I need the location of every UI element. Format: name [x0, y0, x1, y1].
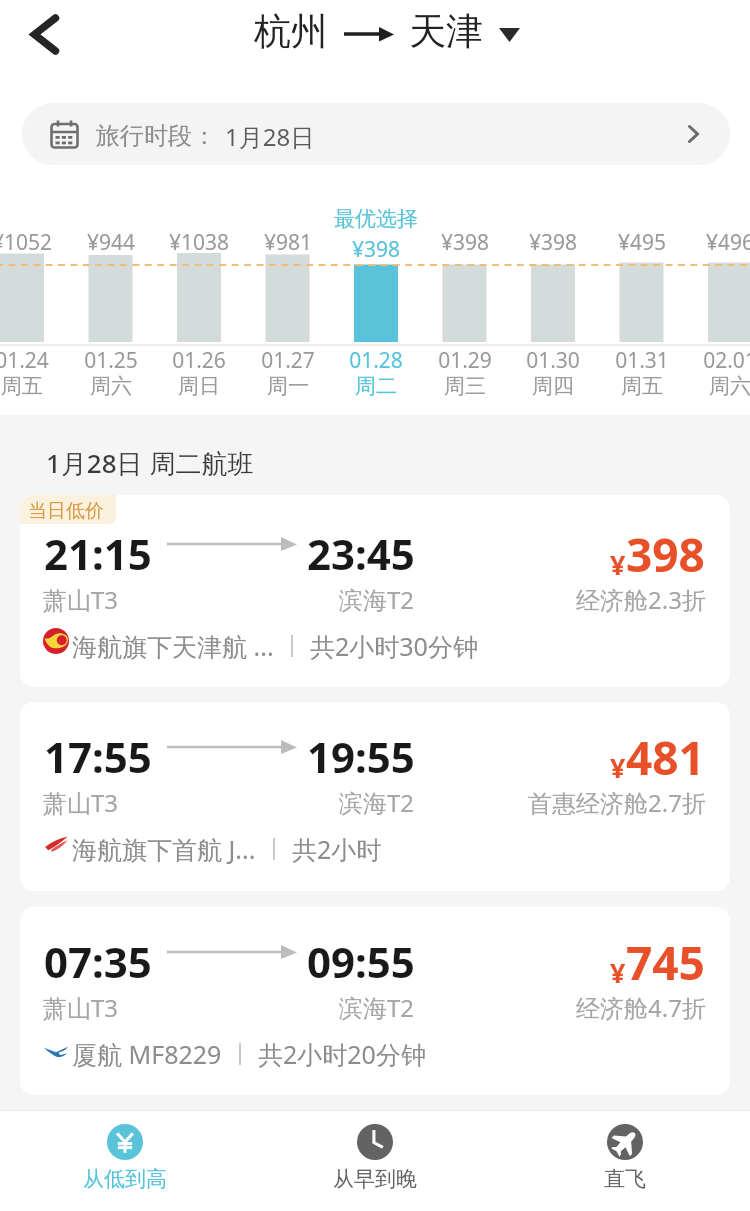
- staticText: 萧山T3: [43, 583, 119, 616]
- button[interactable]: 当日低价: [20, 495, 730, 687]
- button[interactable]: Back: [6, 0, 82, 76]
- button[interactable]: 直飞: [500, 1110, 750, 1211]
- staticText: 天津: [409, 8, 483, 55]
- staticText: 旅行时段：: [96, 121, 216, 151]
- staticText: ¥495: [582, 228, 702, 257]
- staticText: 周六: [51, 373, 171, 399]
- staticText: 当日低价: [28, 499, 104, 523]
- staticText: 萧山T3: [43, 991, 119, 1024]
- staticText: 萧山T3: [43, 786, 119, 819]
- staticText: 周一: [228, 373, 348, 399]
- staticText: 经济舱2.3折: [576, 583, 706, 616]
- staticText: 杭州: [254, 8, 328, 55]
- staticText: 经济舱4.7折: [576, 991, 706, 1024]
- staticText: ¥496: [670, 228, 750, 257]
- staticText: 共2小时30分钟: [310, 629, 478, 663]
- staticText: 1月28日: [225, 120, 315, 153]
- staticText: 首惠经济舱2.7折: [528, 786, 706, 819]
- staticText: 01.29: [405, 346, 525, 375]
- staticText: ¥944: [51, 228, 171, 257]
- staticText: 01.26: [139, 346, 259, 375]
- staticText: 09:55: [307, 933, 415, 990]
- button[interactable]: 17:55: [20, 702, 730, 891]
- staticText: 周五: [582, 373, 702, 399]
- staticText: 海航旗下天津航 ...: [72, 629, 274, 663]
- staticText: 滨海T2: [339, 583, 415, 616]
- staticText: 01.28: [316, 346, 436, 375]
- staticText: 厦航 MF8229: [72, 1037, 222, 1071]
- staticText: ¥1038: [139, 228, 259, 257]
- staticText: 481: [626, 726, 705, 789]
- staticText: 745: [626, 931, 705, 994]
- staticText: ¥398: [316, 235, 436, 264]
- staticText: 01.27: [228, 346, 348, 375]
- staticText: 滨海T2: [339, 991, 415, 1024]
- button[interactable]: 旅行时段：: [22, 103, 730, 165]
- staticText: 共2小时20分钟: [258, 1037, 426, 1071]
- staticText: ¥: [610, 546, 626, 583]
- staticText: 滨海T2: [339, 786, 415, 819]
- staticText: ¥398: [493, 228, 613, 257]
- staticText: 01.31: [582, 346, 702, 375]
- staticText: 海航旗下首航 J...: [72, 832, 256, 866]
- staticText: 21:15: [44, 525, 152, 582]
- staticText: ¥981: [228, 228, 348, 257]
- button[interactable]: 从低到高: [0, 1110, 250, 1211]
- staticText: 周日: [139, 373, 259, 399]
- button[interactable]: 从早到晚: [250, 1110, 500, 1211]
- staticText: 01.25: [51, 346, 171, 375]
- staticText: ¥: [610, 954, 626, 991]
- staticText: 直飞: [604, 1166, 646, 1192]
- staticText: 17:55: [44, 728, 152, 785]
- staticText: ¥398: [405, 228, 525, 257]
- button[interactable]: 07:35: [20, 907, 730, 1095]
- staticText: 周五: [0, 373, 82, 399]
- staticText: 从低到高: [83, 1166, 167, 1192]
- staticText: 23:45: [307, 525, 415, 582]
- staticText: 从早到晚: [333, 1166, 417, 1192]
- staticText: 共2小时: [292, 832, 382, 866]
- staticText: 1月28日 周二航班: [46, 445, 254, 481]
- staticText: 01.24: [0, 346, 82, 375]
- staticText: 最优选择: [316, 206, 436, 232]
- staticText: 02.01: [670, 346, 750, 375]
- staticText: 周二: [316, 373, 436, 399]
- staticText: 398: [626, 523, 705, 586]
- staticText: 19:55: [307, 728, 415, 785]
- staticText: 周六: [670, 373, 750, 399]
- staticText: 07:35: [44, 933, 152, 990]
- staticText: ¥: [610, 749, 626, 786]
- staticText: ¥1052: [0, 228, 82, 257]
- staticText: 周三: [405, 373, 525, 399]
- staticText: 周四: [493, 373, 613, 399]
- staticText: 01.30: [493, 346, 613, 375]
